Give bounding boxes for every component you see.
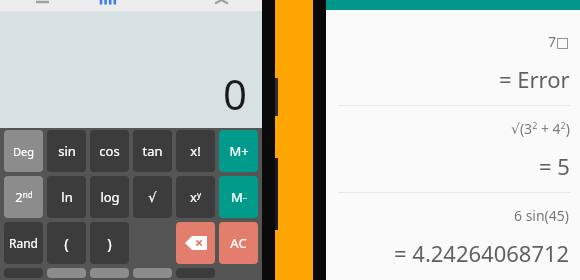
- button[interactable]: x!: [176, 130, 215, 172]
- button[interactable]: Key: [4, 268, 43, 278]
- staticText: = 4.24264068712: [394, 238, 570, 268]
- staticText: 6 sin(45): [514, 206, 570, 225]
- button[interactable]: Divide: [176, 268, 215, 278]
- staticText: √(32 + 42): [511, 119, 570, 138]
- button[interactable]: 2nd: [4, 176, 43, 218]
- staticText: AC: [230, 234, 247, 252]
- staticText: cos: [99, 142, 120, 160]
- button[interactable]: M+: [219, 130, 258, 172]
- button[interactable]: ): [90, 222, 129, 264]
- button[interactable]: log: [90, 176, 129, 218]
- button[interactable]: tan: [133, 130, 172, 172]
- button[interactable]: Seven: [47, 268, 86, 278]
- staticText: ln: [61, 188, 73, 206]
- button[interactable]: √: [133, 176, 172, 218]
- staticText: (: [64, 233, 69, 253]
- staticText: M+: [229, 142, 249, 160]
- button[interactable]: Rand: [4, 222, 43, 264]
- staticText: sin: [58, 142, 76, 160]
- staticText: tan: [142, 142, 163, 160]
- staticText: Deg: [13, 144, 34, 159]
- staticText: ): [107, 233, 112, 253]
- staticText: Rand: [9, 235, 38, 251]
- staticText: = 5: [539, 151, 570, 181]
- button[interactable]: Backspace: [176, 222, 215, 264]
- staticText: √: [148, 190, 157, 205]
- button[interactable]: xy: [176, 176, 215, 218]
- button[interactable]: Nine: [133, 268, 172, 278]
- button[interactable]: Eight: [90, 268, 129, 278]
- staticText: M-: [231, 188, 247, 206]
- button[interactable]: cos: [90, 130, 129, 172]
- staticText: 2nd: [15, 188, 33, 206]
- staticText: 0: [223, 65, 248, 122]
- staticText: xy: [190, 188, 201, 206]
- button[interactable]: ln: [47, 176, 86, 218]
- button[interactable]: (: [47, 222, 86, 264]
- staticText: log: [100, 188, 120, 206]
- button[interactable]: sin: [47, 130, 86, 172]
- staticText: x!: [190, 142, 201, 160]
- staticText: = Error: [499, 64, 570, 94]
- button[interactable]: AC: [219, 222, 258, 264]
- staticText: 7□: [548, 32, 570, 51]
- button[interactable]: Deg: [4, 130, 43, 172]
- button[interactable]: M-: [219, 176, 258, 218]
